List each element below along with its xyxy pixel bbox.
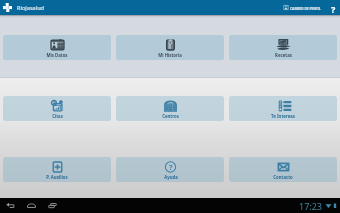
button[interactable]: Centros — [116, 96, 224, 121]
button[interactable]: ? — [116, 157, 224, 182]
staticText: Mis Datos — [46, 52, 68, 58]
staticText: Contacto — [273, 174, 293, 180]
button[interactable]: Back — [4, 199, 17, 212]
button[interactable]: CAMBIO DE PERFIL — [282, 4, 322, 11]
staticText: ? — [169, 162, 173, 172]
staticText: Citas — [52, 113, 63, 119]
button[interactable]: Mi Historia — [116, 35, 224, 60]
staticText: Te Interesa — [271, 113, 295, 119]
staticText: Ayuda — [164, 174, 178, 180]
button[interactable]: Mis Datos — [3, 35, 111, 60]
button[interactable]: Home — [25, 199, 38, 212]
button[interactable]: Te Interesa — [229, 96, 337, 121]
staticText: P. Auxilios — [46, 174, 68, 180]
button[interactable]: Recents — [46, 199, 59, 212]
button[interactable]: Recetas — [229, 35, 337, 60]
staticText: CAMBIO DE PERFIL — [290, 6, 321, 10]
button[interactable]: Contacto — [229, 157, 337, 182]
staticText: Centros — [162, 113, 179, 119]
staticText: ? — [331, 3, 336, 13]
staticText: Riojasalud — [17, 4, 45, 12]
staticText: 17:23 — [299, 200, 323, 212]
staticText: Mi Historia — [158, 52, 182, 58]
button[interactable]: Ayuda — [328, 3, 338, 13]
staticText: Recetas — [275, 52, 292, 58]
button[interactable]: P. Auxilios — [3, 157, 111, 182]
button[interactable]: Citas — [3, 96, 111, 121]
